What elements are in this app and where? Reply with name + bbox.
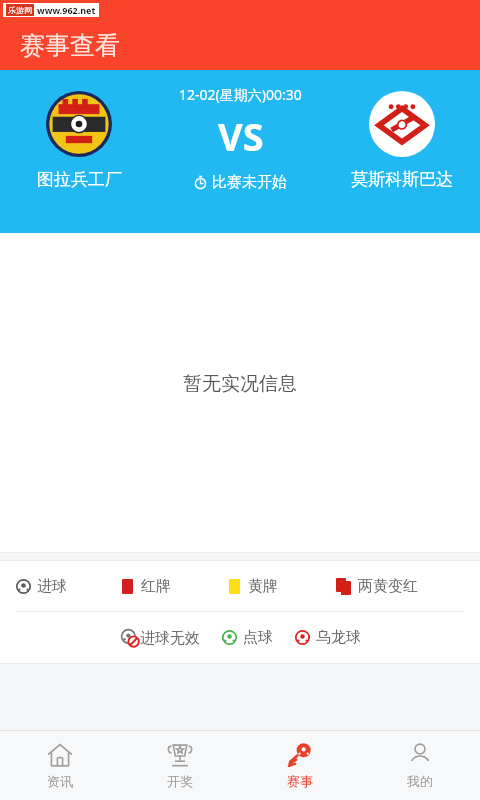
- button[interactable]: 两黄变红: [336, 577, 464, 596]
- button[interactable]: 资讯: [0, 731, 120, 800]
- staticText: 乌龙球: [316, 628, 361, 647]
- staticText: 黄牌: [248, 577, 278, 596]
- staticText: 我的: [407, 773, 433, 789]
- other: 开奖: [167, 742, 193, 768]
- other: 资讯: [47, 742, 73, 768]
- button[interactable]: 开奖: [120, 731, 240, 800]
- button[interactable]: 乌龙球: [295, 628, 361, 647]
- button[interactable]: 进球: [16, 577, 122, 596]
- staticText: 赛事查看: [20, 30, 120, 61]
- staticText: 点球: [243, 628, 273, 647]
- button[interactable]: 进球无效: [120, 628, 200, 648]
- staticText: 暂无实况信息: [183, 372, 297, 396]
- staticText: 赛事: [287, 773, 313, 789]
- button[interactable]: 点球: [222, 628, 273, 647]
- staticText: 资讯: [47, 773, 73, 789]
- button[interactable]: 赛事: [240, 731, 360, 800]
- staticText: 开奖: [167, 773, 193, 789]
- staticText: 图拉兵工厂: [37, 169, 122, 190]
- button[interactable]: 红牌: [122, 577, 229, 596]
- other: 我的: [407, 742, 433, 768]
- other: 赛事: [287, 742, 313, 768]
- button[interactable]: 黄牌: [229, 577, 336, 596]
- staticText: 进球无效: [140, 629, 200, 648]
- staticText: 12-02(星期六)00:30: [179, 85, 302, 104]
- staticText: VS: [218, 110, 264, 162]
- staticText: www.962.net: [37, 4, 96, 16]
- staticText: 莫斯科斯巴达: [351, 169, 453, 190]
- staticText: 比赛未开始: [212, 173, 287, 192]
- button[interactable]: 我的: [360, 731, 480, 800]
- staticText: 红牌: [141, 577, 171, 596]
- staticText: 进球: [37, 577, 67, 596]
- staticText: 乐游网: [8, 5, 32, 15]
- staticText: 两黄变红: [358, 577, 418, 596]
